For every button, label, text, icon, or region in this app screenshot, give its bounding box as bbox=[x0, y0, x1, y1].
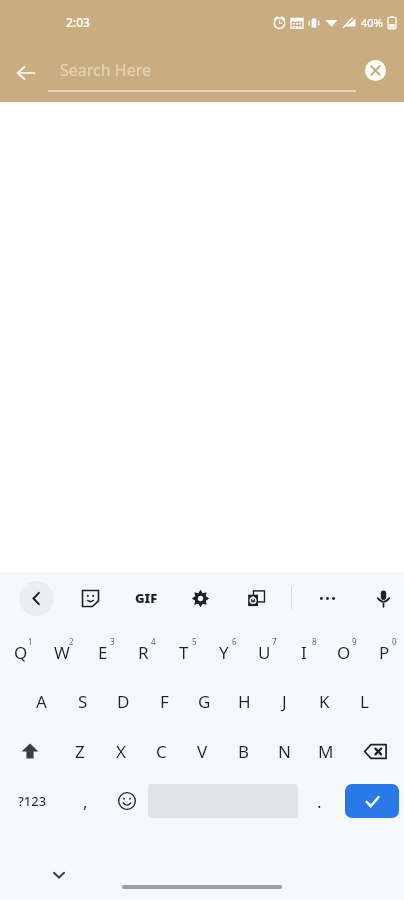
staticText: 6 bbox=[232, 636, 237, 647]
button[interactable]: S bbox=[62, 676, 103, 726]
staticText: M bbox=[318, 740, 334, 763]
staticText: F bbox=[160, 690, 169, 713]
button[interactable]: G bbox=[184, 676, 224, 726]
button[interactable]: I bbox=[284, 624, 324, 676]
staticText: H bbox=[238, 690, 251, 713]
button[interactable]: U bbox=[244, 624, 284, 676]
button[interactable]: F bbox=[144, 676, 184, 726]
staticText: T bbox=[179, 641, 189, 664]
staticText: Z bbox=[75, 740, 85, 763]
staticText: 7 bbox=[272, 636, 277, 647]
button[interactable]: Voice input bbox=[366, 581, 400, 615]
button[interactable]: D bbox=[103, 676, 144, 726]
button[interactable]: Search Here bbox=[48, 49, 356, 97]
staticText: ?123 bbox=[18, 792, 47, 810]
staticText: 5 bbox=[192, 636, 197, 647]
button[interactable]: Back bbox=[8, 55, 44, 91]
staticText: 0 bbox=[392, 636, 397, 647]
staticText: Search Here bbox=[60, 59, 151, 81]
staticText: 1 bbox=[28, 636, 33, 647]
button[interactable]: Shift bbox=[0, 726, 59, 776]
staticText: GIF bbox=[135, 589, 158, 607]
staticText: N bbox=[278, 740, 291, 763]
button[interactable]: V bbox=[182, 726, 223, 776]
staticText: I bbox=[301, 641, 307, 664]
staticText: U bbox=[258, 641, 271, 664]
staticText: S bbox=[78, 690, 88, 713]
staticText: 2 bbox=[69, 636, 74, 647]
staticText: G bbox=[198, 690, 211, 713]
button[interactable]: L bbox=[344, 676, 384, 726]
staticText: B bbox=[238, 740, 250, 763]
staticText: A bbox=[36, 690, 47, 713]
button[interactable]: R bbox=[123, 624, 164, 676]
staticText: 40% bbox=[361, 15, 383, 30]
button[interactable]: Translate bbox=[239, 581, 273, 615]
button[interactable]: N bbox=[264, 726, 305, 776]
staticText: C bbox=[156, 740, 167, 763]
button[interactable]: W bbox=[41, 624, 82, 676]
button[interactable]: , bbox=[64, 776, 106, 826]
staticText: 4 bbox=[151, 636, 156, 647]
button[interactable]: Back bbox=[19, 581, 54, 616]
staticText: L bbox=[360, 690, 369, 713]
button[interactable]: Backspace bbox=[346, 726, 404, 776]
button[interactable]: More options bbox=[310, 581, 344, 615]
staticText: , bbox=[83, 790, 88, 813]
staticText: W bbox=[54, 641, 70, 664]
button[interactable]: Hide keyboard bbox=[42, 858, 76, 892]
button[interactable]: H bbox=[224, 676, 264, 726]
button[interactable]: B bbox=[223, 726, 264, 776]
staticText: X bbox=[116, 740, 126, 763]
button[interactable]: T bbox=[164, 624, 204, 676]
button[interactable]: Stickers bbox=[73, 581, 107, 615]
button[interactable]: GIF bbox=[129, 581, 163, 615]
button[interactable]: M bbox=[305, 726, 346, 776]
staticText: R bbox=[138, 641, 149, 664]
button[interactable]: Emoji bbox=[106, 776, 148, 826]
button[interactable]: E bbox=[82, 624, 123, 676]
button[interactable]: J bbox=[264, 676, 304, 726]
button[interactable]: ?123 bbox=[0, 776, 64, 826]
staticText: K bbox=[319, 690, 330, 713]
staticText: 2:03 bbox=[66, 14, 90, 30]
staticText: P bbox=[379, 641, 390, 664]
staticText: E bbox=[98, 641, 108, 664]
staticText: 3 bbox=[110, 636, 115, 647]
staticText: O bbox=[337, 641, 351, 664]
staticText: J bbox=[282, 690, 287, 713]
staticText: D bbox=[117, 690, 130, 713]
staticText: . bbox=[317, 790, 322, 813]
button[interactable]: O bbox=[324, 624, 364, 676]
staticText: 8 bbox=[312, 636, 317, 647]
button[interactable]: Z bbox=[59, 726, 100, 776]
button[interactable]: Q bbox=[0, 624, 41, 676]
button[interactable]: Enter bbox=[345, 784, 399, 818]
button[interactable]: Y bbox=[204, 624, 244, 676]
button[interactable]: Clear search bbox=[364, 59, 386, 81]
button[interactable]: P bbox=[364, 624, 404, 676]
button[interactable]: A bbox=[21, 676, 62, 726]
staticText: V bbox=[197, 740, 208, 763]
button[interactable]: X bbox=[100, 726, 141, 776]
staticText: Y bbox=[219, 641, 229, 664]
staticText: 9 bbox=[352, 636, 357, 647]
button[interactable]: K bbox=[304, 676, 344, 726]
button[interactable]: C bbox=[141, 726, 182, 776]
button[interactable]: . bbox=[298, 776, 340, 826]
staticText: Q bbox=[14, 641, 28, 664]
button[interactable]: Settings bbox=[183, 581, 217, 615]
